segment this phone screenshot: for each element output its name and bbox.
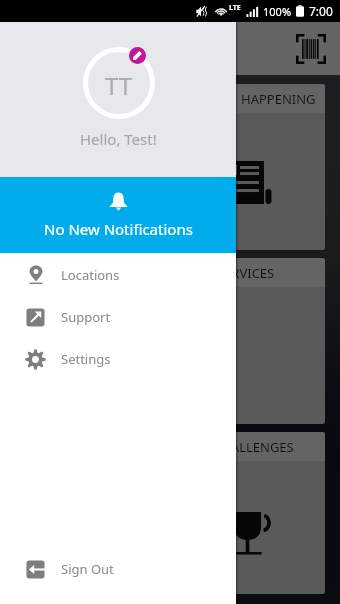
staticText: HAPPENING [241,90,316,108]
staticText: Hello, Test! [80,129,157,149]
button[interactable]: Locations [0,254,236,296]
staticText: 7:00 [309,3,333,19]
button[interactable]: Settings [0,338,236,380]
button[interactable]: No New Notifications [0,177,236,253]
button[interactable]: HAPPENING [15,84,325,250]
button[interactable]: Scan barcode [296,34,326,64]
staticText: No New Notifications [44,219,193,239]
staticText: 100% [263,4,292,19]
button[interactable]: CHALLENGES [15,432,325,594]
staticText: Locations [61,266,120,284]
staticText: CHALLENGES [213,438,294,456]
staticText: SERVICES [217,264,275,282]
staticText: TT [105,69,133,102]
staticText: Sign Out [61,560,114,578]
button[interactable]: Edit profile [129,47,146,64]
button[interactable]: SERVICES [15,258,325,424]
staticText: Support [61,308,111,326]
staticText: LTE [229,3,241,13]
button[interactable]: Sign Out [0,548,236,590]
button[interactable]: Support [0,296,236,338]
staticText: Settings [61,350,111,368]
